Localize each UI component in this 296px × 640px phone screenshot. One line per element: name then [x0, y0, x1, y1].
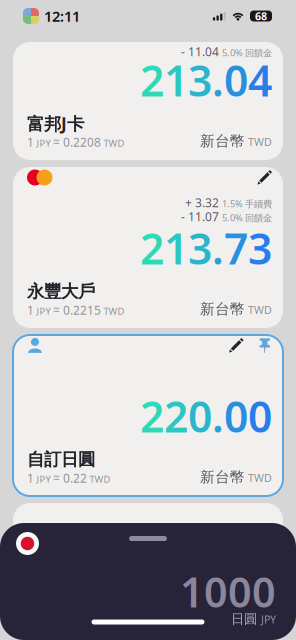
staticText: - 11.04 — [181, 43, 219, 59]
staticText: 永豐大戶 — [27, 281, 95, 302]
button[interactable]: Edit — [257, 170, 272, 185]
staticText: 手續費 — [245, 198, 272, 210]
staticText: JPY — [261, 612, 276, 626]
staticText: 3 — [248, 220, 272, 276]
staticText: 自訂日圓 — [27, 449, 95, 470]
staticText: 12:11 — [44, 6, 80, 26]
staticText: = 0.2208 — [53, 134, 101, 150]
staticText: JPY — [36, 137, 50, 149]
staticText: TWD — [248, 303, 272, 317]
staticText: 1 — [164, 52, 188, 108]
staticText: 4 — [248, 52, 272, 108]
staticText: 3 — [188, 220, 212, 276]
staticText: = 0.2215 — [53, 302, 101, 318]
staticText: + 3.32 — [185, 194, 219, 210]
staticText: 0 — [248, 388, 272, 444]
staticText: 1 — [27, 470, 34, 486]
button[interactable]: Pin — [258, 337, 272, 353]
staticText: TWD — [103, 137, 124, 149]
staticText: 68 — [255, 9, 267, 23]
staticText: . — [212, 220, 224, 276]
staticText: 0 — [224, 388, 248, 444]
staticText: 新台幣 — [200, 468, 245, 486]
staticText: 1.5% — [222, 197, 243, 210]
staticText: 7 — [224, 220, 248, 276]
button[interactable]: Edit — [229, 338, 244, 353]
staticText: 日圓 — [231, 611, 257, 627]
staticText: - 11.07 — [181, 208, 219, 224]
staticText: . — [212, 52, 224, 108]
staticText: 1 — [164, 220, 188, 276]
staticText: 0 — [224, 52, 248, 108]
staticText: 1 — [27, 302, 34, 318]
staticText: . — [212, 388, 224, 444]
staticText: 3 — [188, 52, 212, 108]
staticText: 回饋金 — [245, 212, 272, 224]
staticText: TWD — [248, 471, 272, 485]
staticText: 2 — [140, 220, 164, 276]
staticText: TWD — [103, 305, 124, 317]
staticText: 2 — [140, 52, 164, 108]
staticText: 富邦J卡 — [27, 112, 84, 135]
staticText: JPY — [36, 305, 50, 317]
staticText: TWD — [248, 135, 272, 149]
button[interactable]: - 11.04 — [13, 42, 283, 160]
staticText: 新台幣 — [200, 132, 245, 150]
staticText: 1000 — [180, 564, 276, 619]
staticText: = 0.22 — [53, 470, 87, 486]
button[interactable]: Currency JPY — [16, 532, 39, 555]
staticText: 1 — [27, 134, 34, 150]
staticText: 5.0% — [222, 46, 243, 59]
button[interactable]: + 3.32 — [13, 167, 283, 328]
staticText: 新台幣 — [200, 300, 245, 318]
button[interactable]: 2 — [13, 335, 283, 496]
staticText: 2 — [140, 388, 164, 444]
staticText: 回饋金 — [245, 47, 272, 59]
staticText: TWD — [89, 473, 110, 485]
staticText: JPY — [36, 473, 50, 485]
staticText: 0 — [188, 388, 212, 444]
staticText: 2 — [164, 388, 188, 444]
staticText: 5.0% — [222, 211, 243, 224]
